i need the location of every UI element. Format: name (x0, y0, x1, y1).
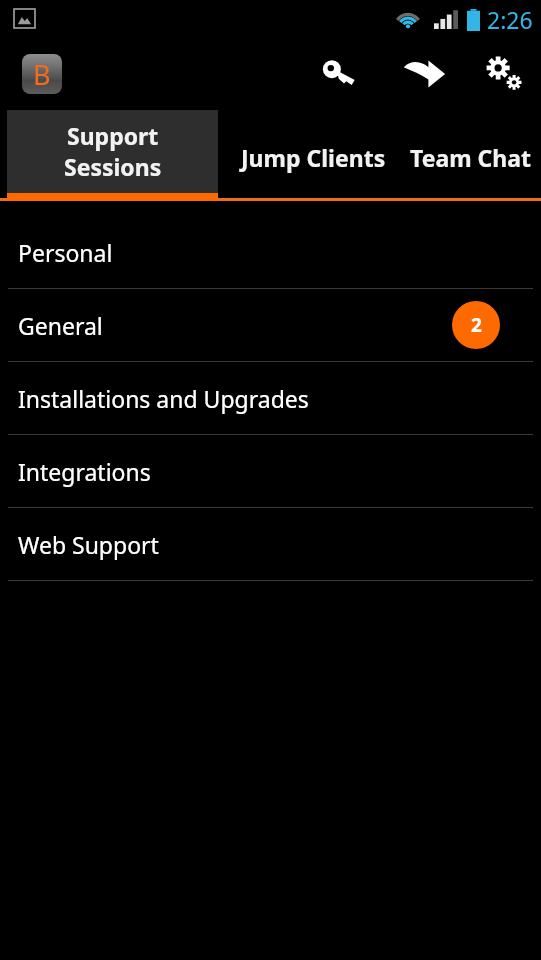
button[interactable]: Support (7, 110, 218, 201)
button[interactable]: Team Chat (408, 110, 541, 201)
button[interactable]: Integrations (0, 435, 541, 507)
staticText: Personal (18, 237, 113, 268)
staticText: 2 (471, 312, 482, 338)
button[interactable]: Jump Clients (218, 110, 408, 201)
staticText: Team Chat (410, 142, 532, 173)
staticText: Support (67, 120, 159, 151)
staticText: B (33, 56, 51, 93)
staticText: Jump Clients (241, 142, 386, 173)
button[interactable]: Settings (477, 47, 531, 101)
button[interactable]: Web Support (0, 508, 541, 580)
button[interactable]: Installations and Upgrades (0, 362, 541, 434)
button[interactable]: General (0, 289, 541, 361)
staticText: Web Support (18, 529, 159, 560)
button[interactable]: Personal (0, 216, 541, 288)
staticText: Sessions (64, 151, 162, 182)
button[interactable]: Start session (397, 47, 451, 101)
button[interactable]: Credentials (314, 47, 368, 101)
staticText: Integrations (18, 456, 151, 487)
staticText: General (18, 310, 103, 341)
button[interactable]: App home (22, 54, 62, 94)
staticText: 2:26 (487, 4, 533, 35)
staticText: Installations and Upgrades (18, 383, 309, 414)
